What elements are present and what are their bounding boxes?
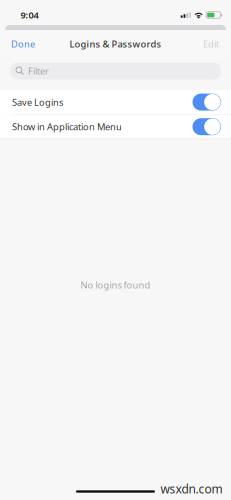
staticText: Edit — [203, 38, 219, 50]
button[interactable]: Edit — [191, 30, 231, 58]
staticText: wsxdn.com — [160, 481, 222, 497]
staticText: Filter — [28, 65, 49, 77]
staticText: Done — [11, 38, 35, 50]
staticText: 9:04 — [20, 9, 38, 21]
button[interactable]: Filter — [10, 62, 221, 79]
staticText: No logins found — [80, 279, 150, 291]
staticText: Show in Application Menu — [12, 120, 122, 133]
button[interactable]: Done — [0, 30, 46, 58]
button[interactable]: Show in Application Menu — [0, 115, 231, 138]
button[interactable]: Save Logins — [0, 90, 231, 115]
staticText: Save Logins — [12, 96, 63, 108]
staticText: Logins & Passwords — [69, 38, 161, 50]
